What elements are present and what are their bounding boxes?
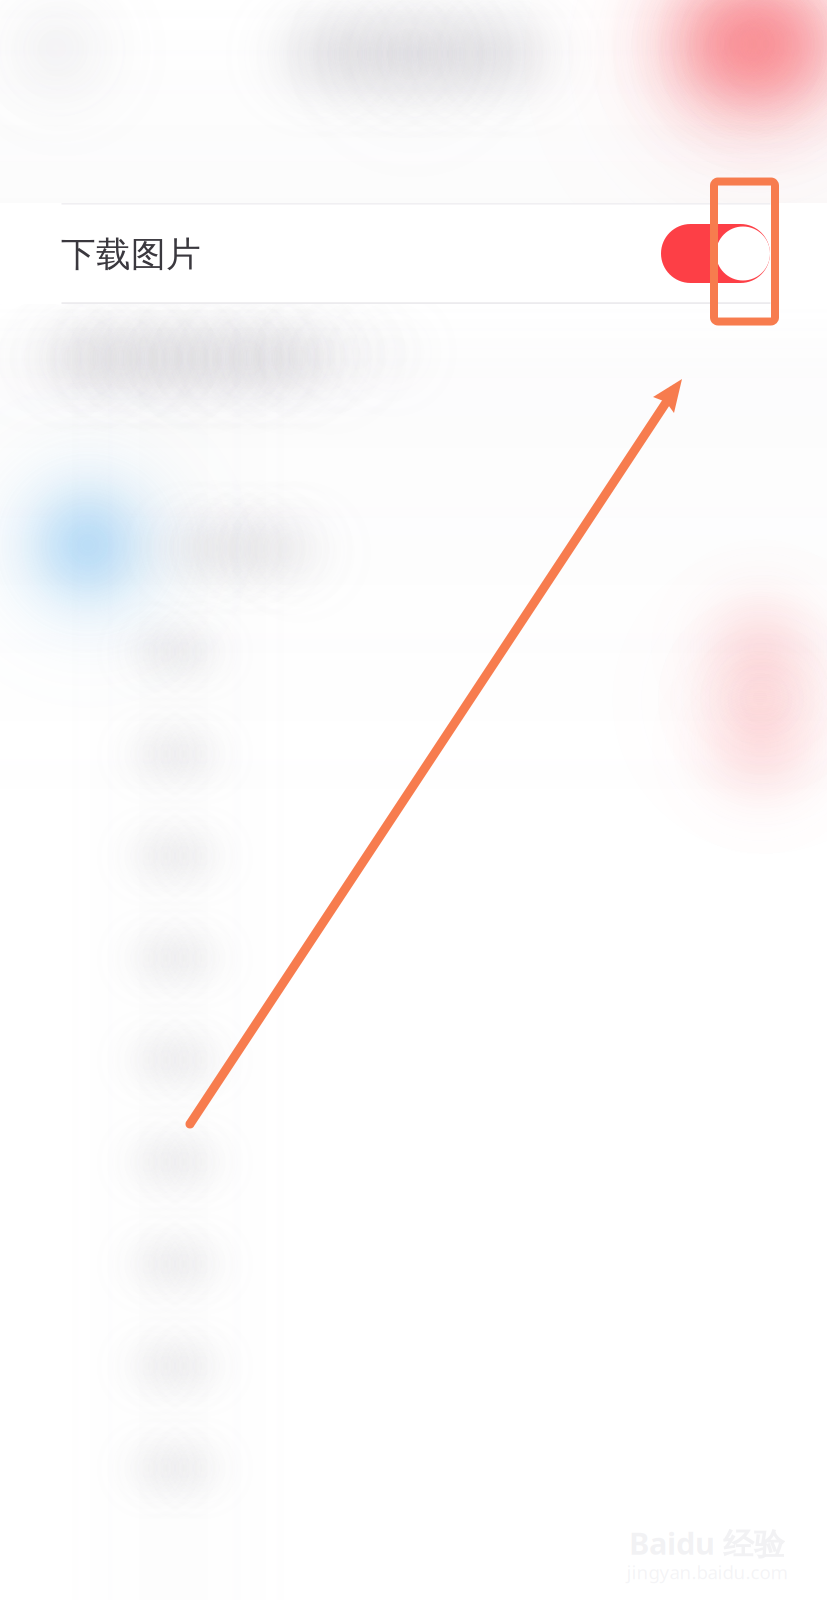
staticText: Baidu 经验	[629, 1523, 785, 1563]
staticText: jingyan.baidu.com	[626, 1560, 787, 1584]
staticText: 下载图片	[61, 233, 201, 276]
button[interactable]: 下载图片	[0, 203, 827, 304]
button[interactable]: 下载图片, on	[661, 224, 770, 283]
